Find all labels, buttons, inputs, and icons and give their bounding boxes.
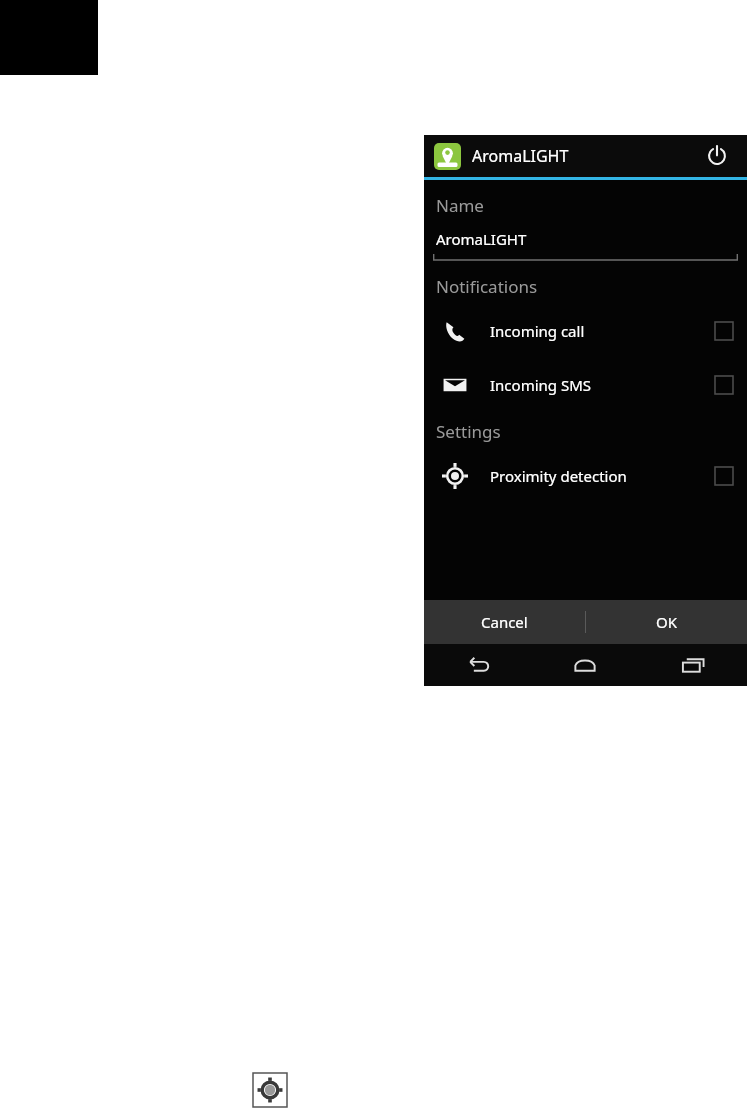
staticText: AromaLIGHT xyxy=(472,145,569,167)
staticText: Proximity detection xyxy=(490,466,627,486)
staticText: Name xyxy=(436,194,484,217)
staticText: Settings xyxy=(436,420,501,443)
staticText: Incoming SMS xyxy=(490,375,591,395)
button[interactable]: Recents xyxy=(639,644,747,686)
button[interactable]: Incoming call xyxy=(424,304,747,358)
button[interactable]: AromaLIGHT xyxy=(433,229,738,262)
button[interactable]: Incoming SMS xyxy=(424,358,747,412)
staticText: Cancel xyxy=(481,612,528,632)
button[interactable]: Power xyxy=(697,136,737,176)
button[interactable]: Cancel xyxy=(424,600,585,644)
staticText: OK xyxy=(656,612,678,632)
staticText: AromaLIGHT xyxy=(436,229,527,249)
staticText: Incoming call xyxy=(490,321,585,341)
button[interactable]: Proximity detection xyxy=(424,449,747,503)
staticText: Notifications xyxy=(436,275,538,298)
button[interactable]: Back xyxy=(424,644,531,686)
button[interactable]: Home xyxy=(531,644,639,686)
button[interactable]: OK xyxy=(586,600,747,644)
